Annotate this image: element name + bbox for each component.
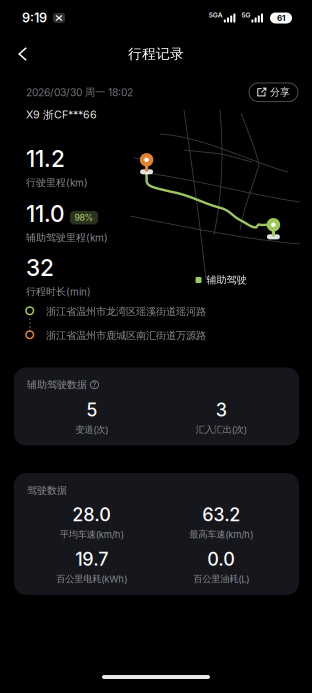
staticText: 11.2 bbox=[26, 145, 65, 172]
staticText: 行驶里程(km) bbox=[26, 176, 88, 189]
button[interactable]: 分享 bbox=[249, 83, 298, 102]
staticText: 百公里电耗(kWh) bbox=[56, 573, 127, 585]
staticText: 5G bbox=[241, 11, 250, 19]
staticText: 浙江省温州市鹿城区南汇街道万源路 bbox=[46, 329, 206, 342]
staticText: 2026/03/30 周一 18:02 bbox=[26, 86, 133, 99]
staticText: 98% bbox=[74, 212, 93, 223]
staticText: 辅助驾驶 bbox=[206, 274, 246, 286]
staticText: 最高车速(km/h) bbox=[189, 528, 253, 540]
staticText: 19.7 bbox=[75, 548, 108, 570]
staticText: 5GA bbox=[209, 11, 223, 19]
staticText: 11.0 bbox=[26, 200, 65, 227]
staticText: 汇入汇出(次) bbox=[196, 424, 247, 436]
staticText: 63.2 bbox=[202, 504, 240, 526]
staticText: 平均车速(km/h) bbox=[60, 528, 124, 540]
staticText: 驾驶数据 bbox=[27, 484, 67, 497]
staticText: X9 浙CF***66 bbox=[26, 108, 97, 122]
staticText: 百公里油耗(L) bbox=[193, 573, 249, 585]
staticText: 变道(次) bbox=[75, 424, 108, 436]
staticText: 辅助驾驶数据 bbox=[27, 378, 87, 391]
staticText: 5 bbox=[86, 399, 97, 421]
staticText: 辅助驾驶里程(km) bbox=[26, 231, 108, 244]
staticText: 9:19 bbox=[22, 10, 47, 26]
staticText: 行程时长(min) bbox=[26, 285, 91, 298]
staticText: 0.0 bbox=[207, 548, 235, 570]
staticText: 分享 bbox=[270, 86, 290, 99]
staticText: 浙江省温州市龙湾区瑶溪街道瑶河路 bbox=[46, 305, 206, 318]
staticText: 行程记录 bbox=[128, 45, 184, 63]
staticText: 61 bbox=[277, 13, 285, 23]
staticText: 28.0 bbox=[72, 504, 111, 526]
staticText: ? bbox=[92, 380, 96, 389]
staticText: 32 bbox=[26, 254, 54, 281]
button[interactable]: 返回 bbox=[3, 36, 43, 72]
staticText: 3 bbox=[216, 399, 227, 421]
